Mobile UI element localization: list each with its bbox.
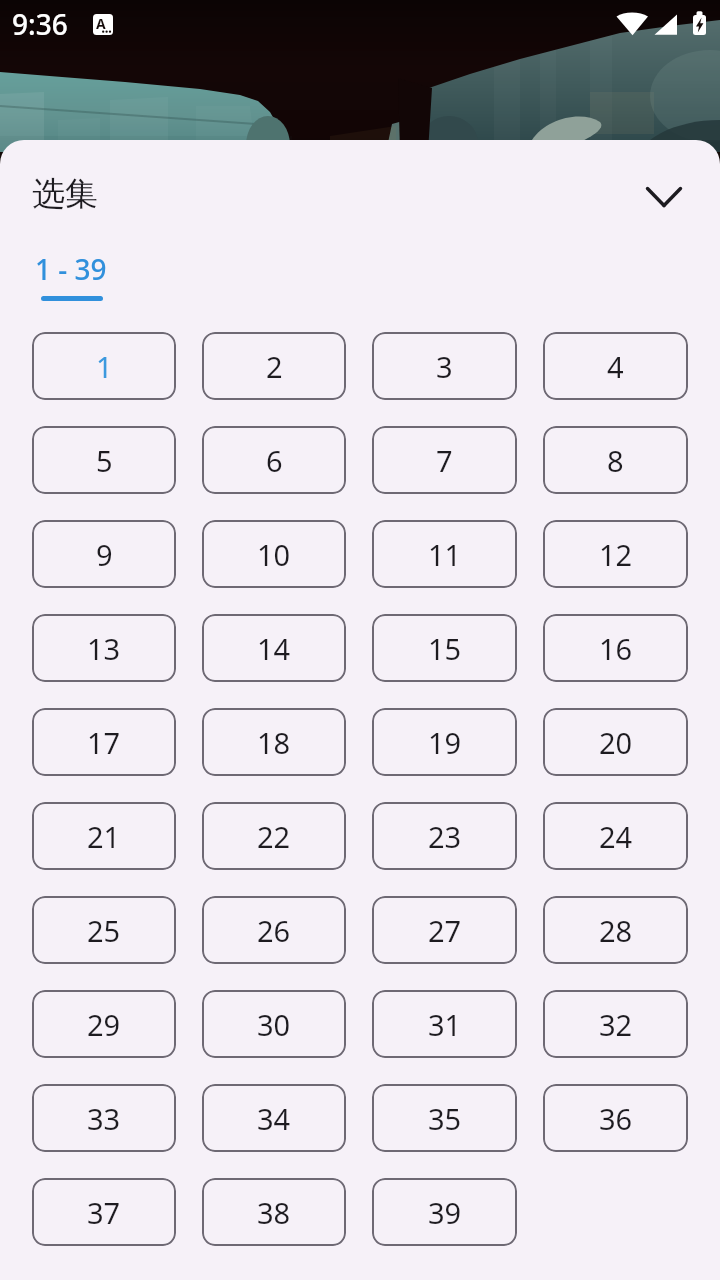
- staticText: 20: [599, 723, 633, 762]
- staticText: 17: [87, 723, 121, 762]
- staticText: 选集: [32, 173, 98, 215]
- button[interactable]: 37: [32, 1178, 176, 1246]
- button[interactable]: 18: [202, 708, 346, 776]
- button[interactable]: 19: [372, 708, 517, 776]
- button[interactable]: 6: [202, 426, 346, 494]
- button[interactable]: 25: [32, 896, 176, 964]
- staticText: 32: [599, 1005, 633, 1044]
- staticText: 1 - 39: [35, 250, 107, 288]
- button[interactable]: 29: [32, 990, 176, 1058]
- staticText: 29: [87, 1005, 121, 1044]
- button[interactable]: 38: [202, 1178, 346, 1246]
- button[interactable]: 22: [202, 802, 346, 870]
- staticText: 28: [599, 911, 633, 950]
- staticText: 31: [428, 1005, 462, 1044]
- staticText: 3: [436, 347, 453, 386]
- staticText: 13: [87, 629, 121, 668]
- staticText: 2: [266, 347, 283, 386]
- button[interactable]: 13: [32, 614, 176, 682]
- button[interactable]: 39: [372, 1178, 517, 1246]
- button[interactable]: 36: [543, 1084, 688, 1152]
- button[interactable]: 1 - 39: [17, 246, 125, 292]
- staticText: 22: [257, 817, 291, 856]
- button[interactable]: 27: [372, 896, 517, 964]
- staticText: 9: [96, 535, 113, 574]
- button[interactable]: 26: [202, 896, 346, 964]
- button[interactable]: 4: [543, 332, 688, 400]
- staticText: 39: [428, 1193, 462, 1232]
- staticText: 24: [599, 817, 633, 856]
- staticText: 9:36: [12, 5, 68, 43]
- button[interactable]: 24: [543, 802, 688, 870]
- button[interactable]: 16: [543, 614, 688, 682]
- button[interactable]: 21: [32, 802, 176, 870]
- button[interactable]: 35: [372, 1084, 517, 1152]
- staticText: 10: [257, 535, 291, 574]
- staticText: 30: [257, 1005, 291, 1044]
- staticText: 35: [428, 1099, 462, 1138]
- staticText: 27: [428, 911, 462, 950]
- staticText: 5: [96, 441, 113, 480]
- staticText: 33: [87, 1099, 121, 1138]
- button[interactable]: 12: [543, 520, 688, 588]
- staticText: 21: [87, 817, 121, 856]
- staticText: 26: [257, 911, 291, 950]
- button[interactable]: 20: [543, 708, 688, 776]
- staticText: 16: [599, 629, 633, 668]
- button[interactable]: 3: [372, 332, 517, 400]
- button[interactable]: 33: [32, 1084, 176, 1152]
- button[interactable]: 1: [32, 332, 176, 400]
- staticText: 19: [428, 723, 462, 762]
- button[interactable]: 2: [202, 332, 346, 400]
- button[interactable]: 34: [202, 1084, 346, 1152]
- staticText: 23: [428, 817, 462, 856]
- staticText: 8: [607, 441, 624, 480]
- button[interactable]: 14: [202, 614, 346, 682]
- staticText: 18: [257, 723, 291, 762]
- button[interactable]: 15: [372, 614, 517, 682]
- button[interactable]: 7: [372, 426, 517, 494]
- staticText: 15: [428, 629, 462, 668]
- staticText: 14: [257, 629, 291, 668]
- staticText: A: [96, 14, 106, 33]
- button[interactable]: 31: [372, 990, 517, 1058]
- button[interactable]: 11: [372, 520, 517, 588]
- button[interactable]: 8: [543, 426, 688, 494]
- button[interactable]: 28: [543, 896, 688, 964]
- staticText: 25: [87, 911, 121, 950]
- staticText: 38: [257, 1193, 291, 1232]
- button[interactable]: Collapse: [640, 169, 688, 217]
- button[interactable]: 32: [543, 990, 688, 1058]
- staticText: 4: [607, 347, 624, 386]
- staticText: 11: [428, 535, 462, 574]
- button[interactable]: 17: [32, 708, 176, 776]
- staticText: 37: [87, 1193, 121, 1232]
- button[interactable]: 9: [32, 520, 176, 588]
- button[interactable]: 5: [32, 426, 176, 494]
- button[interactable]: 10: [202, 520, 346, 588]
- staticText: 36: [599, 1099, 633, 1138]
- staticText: 1: [96, 347, 113, 386]
- staticText: 12: [599, 535, 633, 574]
- button[interactable]: 23: [372, 802, 517, 870]
- staticText: 34: [257, 1099, 291, 1138]
- staticText: 6: [266, 441, 283, 480]
- staticText: 7: [436, 441, 453, 480]
- button[interactable]: 30: [202, 990, 346, 1058]
